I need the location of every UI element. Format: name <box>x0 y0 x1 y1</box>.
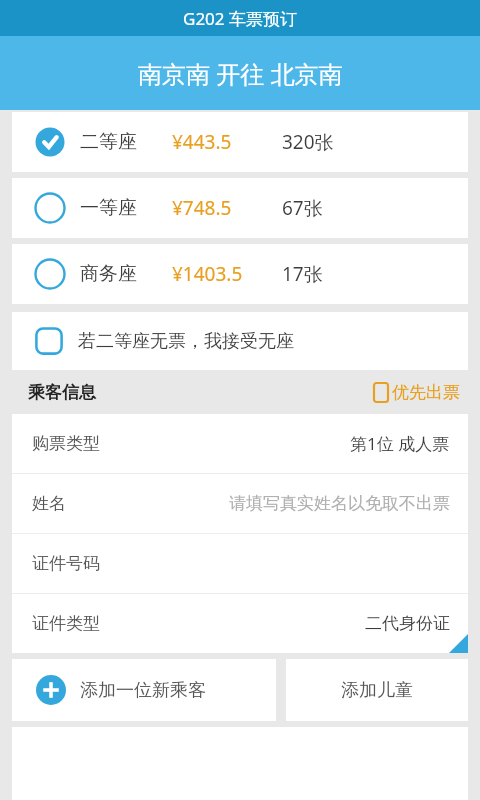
staticText: 添加儿童 <box>341 679 413 702</box>
staticText: ¥1403.5 <box>172 261 243 287</box>
staticText: 二代身份证 <box>365 613 450 634</box>
staticText: 购票类型 <box>32 433 100 454</box>
staticText: 若二等座无票，我接受无座 <box>78 330 294 353</box>
staticText: 17张 <box>282 261 323 287</box>
staticText: ¥748.5 <box>172 195 232 221</box>
staticText: 二等座 <box>80 130 137 154</box>
button[interactable]: 一等座 <box>12 178 468 238</box>
staticText: 证件号码 <box>32 553 100 574</box>
button[interactable]: 优先出票 <box>374 382 460 403</box>
button[interactable]: 证件类型 <box>12 594 468 653</box>
staticText: 一等座 <box>80 196 137 220</box>
staticText: 商务座 <box>80 262 137 286</box>
staticText: 证件类型 <box>32 613 100 634</box>
staticText: 添加一位新乘客 <box>80 679 206 702</box>
button[interactable]: 添加儿童 <box>286 659 468 721</box>
staticText: 乘客信息 <box>28 382 96 403</box>
staticText: 姓名 <box>32 493 66 514</box>
button[interactable]: 证件号码 <box>12 534 468 593</box>
staticText: 67张 <box>282 195 323 221</box>
staticText: 南京南 开往 北京南 <box>138 57 343 90</box>
staticText: 优先出票 <box>392 382 460 403</box>
staticText: 第1位 成人票 <box>350 432 450 455</box>
button[interactable]: 姓名 <box>12 474 468 533</box>
button[interactable]: 二等座 <box>12 112 468 172</box>
staticText: 请填写真实姓名以免取不出票 <box>229 493 450 514</box>
button[interactable]: 添加一位新乘客 <box>12 659 276 721</box>
staticText: ¥443.5 <box>172 129 232 155</box>
button[interactable]: 若二等座无票，我接受无座 <box>12 312 468 370</box>
button[interactable]: 商务座 <box>12 244 468 304</box>
staticText: G202 车票预订 <box>183 7 297 30</box>
staticText: 320张 <box>282 129 334 155</box>
button[interactable]: 购票类型 <box>12 414 468 473</box>
